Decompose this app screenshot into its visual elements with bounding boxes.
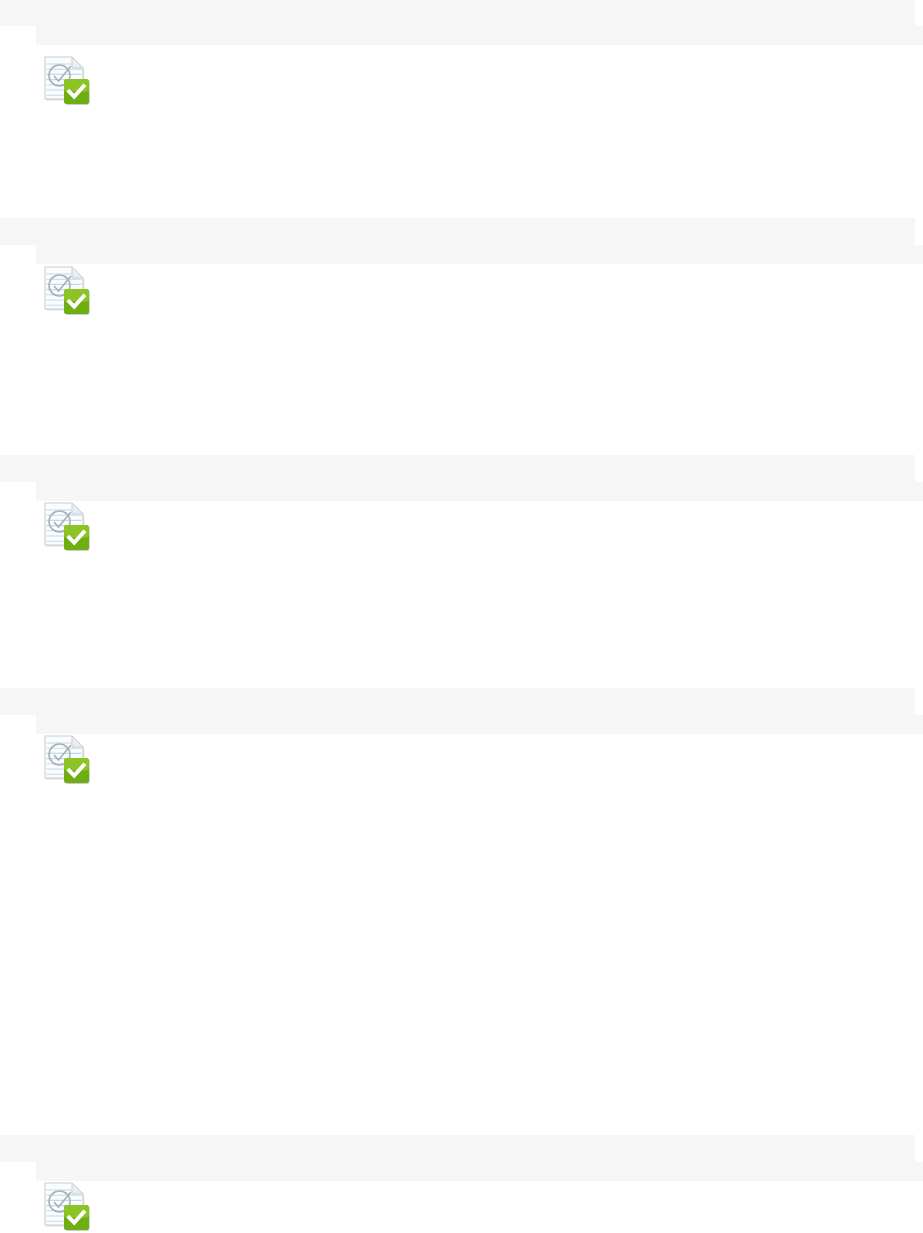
button[interactable]: Completed document <box>42 55 92 105</box>
button[interactable]: Completed document <box>42 734 92 784</box>
button[interactable]: Completed document <box>42 501 92 551</box>
button[interactable]: Completed document <box>42 1181 92 1231</box>
button[interactable]: Completed document <box>42 265 92 315</box>
